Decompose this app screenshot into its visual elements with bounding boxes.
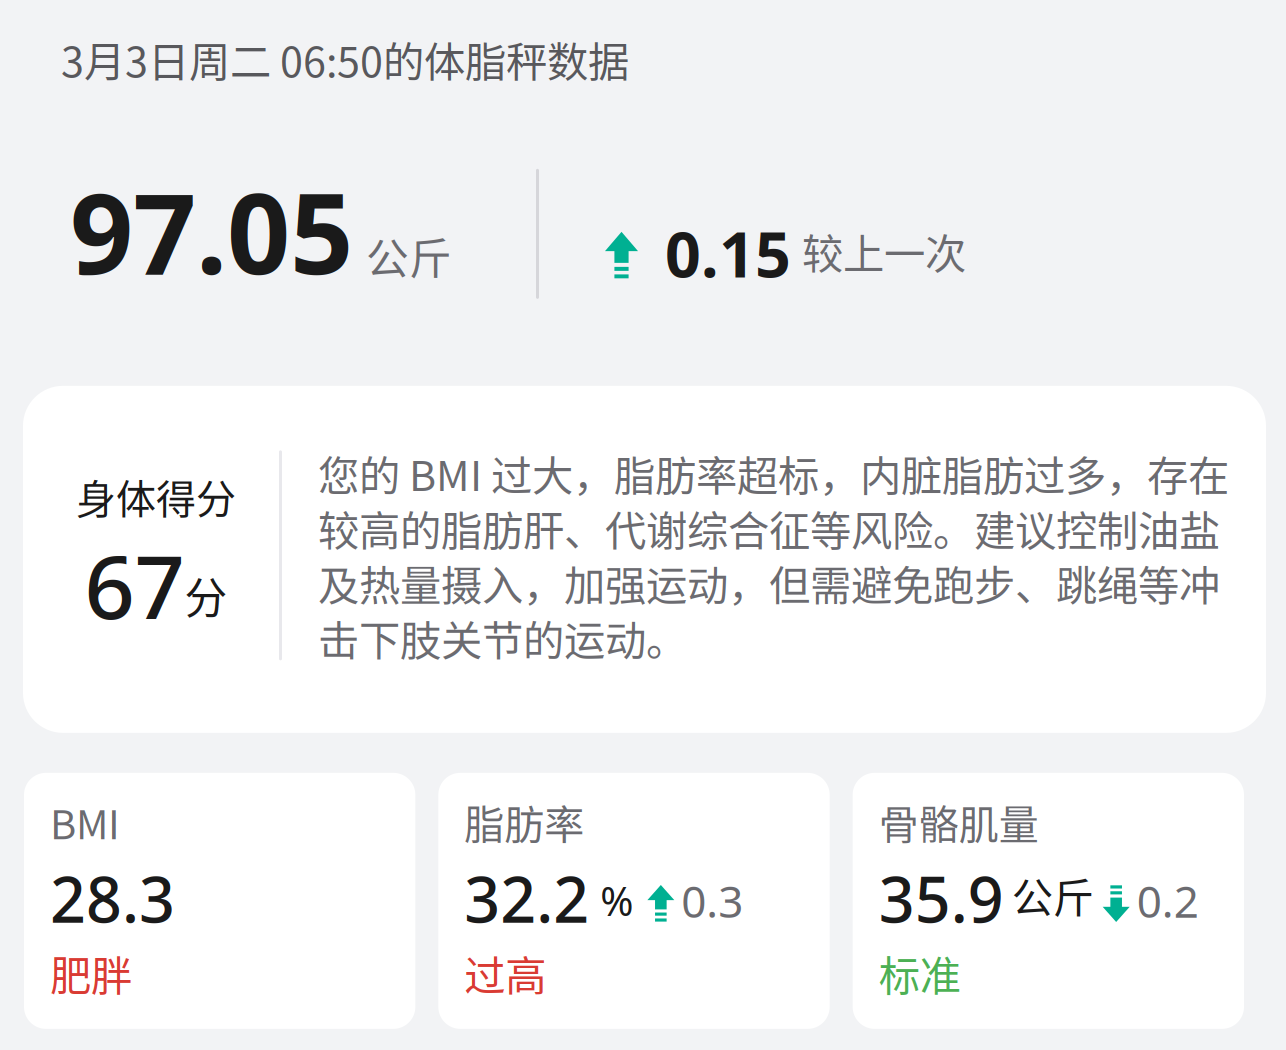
staticText: 32.2 [464,857,589,940]
staticText: 分 [184,564,227,626]
staticText: 标准 [879,943,961,1003]
staticText: 0.3 [681,872,743,930]
button[interactable]: 97.05 [0,189,1286,274]
button[interactable]: BMI [24,773,415,1029]
staticText: 97.05 [70,158,353,305]
staticText: 公斤 [1012,865,1094,925]
button[interactable]: 骨骼肌量 [853,773,1244,1029]
staticText: 肥胖 [50,943,132,1003]
staticText: 您的 BMI 过大，脂肪率超标，内脏脂肪过多，存在较高的脂肪肝、代谢综合征等风险… [318,443,1229,667]
staticText: 28.3 [50,857,175,940]
staticText: BMI [50,793,120,851]
button[interactable]: 身体得分 [23,386,1266,733]
staticText: 身体得分 [76,467,236,525]
staticText: 过高 [464,943,546,1003]
staticText: 3月3日周二 06:50的体脂秤数据 [61,29,629,89]
button[interactable]: 脂肪率 [438,773,830,1029]
staticText: 0.15 [665,212,791,295]
staticText: 0.2 [1137,872,1199,930]
staticText: 骨骼肌量 [879,793,1039,851]
staticText: 67 [84,526,184,643]
staticText: 35.9 [879,857,1004,940]
staticText: 脂肪率 [464,793,584,851]
staticText: 公斤 [366,225,452,287]
staticText: 较上一次 [802,221,966,281]
staticText: % [600,874,633,927]
